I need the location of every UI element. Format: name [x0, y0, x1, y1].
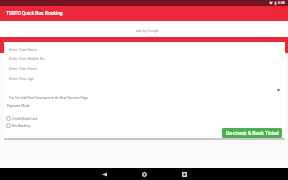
staticText: Payment Mode [7, 104, 30, 108]
button[interactable]: Enter Your Mobile No [4, 53, 285, 63]
button[interactable]: Enter Your Name [4, 44, 285, 54]
staticText: Enter Your Name [9, 47, 38, 51]
button[interactable]: Net Banking [4, 122, 285, 129]
button[interactable]: Recents [174, 168, 194, 180]
button[interactable]: ads by Google [0, 21, 288, 37]
staticText: TSRTC Quick Bus Booking [6, 10, 63, 16]
button[interactable]: Enter Your Age [4, 73, 285, 83]
button[interactable]: Re-check & Book Ticket [222, 128, 282, 138]
button[interactable]: Home [134, 168, 154, 180]
button[interactable]: Back [94, 168, 114, 180]
staticText: Re-check & Book Ticket [226, 130, 279, 136]
staticText: Enter Your Email [9, 66, 37, 70]
button[interactable]: Enter Your Email [4, 63, 285, 73]
button[interactable]: Credit/Debit Card [4, 115, 285, 122]
staticText: Net Banking [12, 124, 30, 128]
staticText: Credit/Debit Card [12, 117, 38, 121]
staticText: Enter Your Mobile No [9, 56, 45, 60]
staticText: 6:38 [278, 1, 285, 5]
staticText: You Can Add New Passengers at the Next S… [9, 96, 89, 100]
staticText: Enter Your Age [9, 76, 35, 80]
staticText: ads by Google [136, 29, 159, 33]
